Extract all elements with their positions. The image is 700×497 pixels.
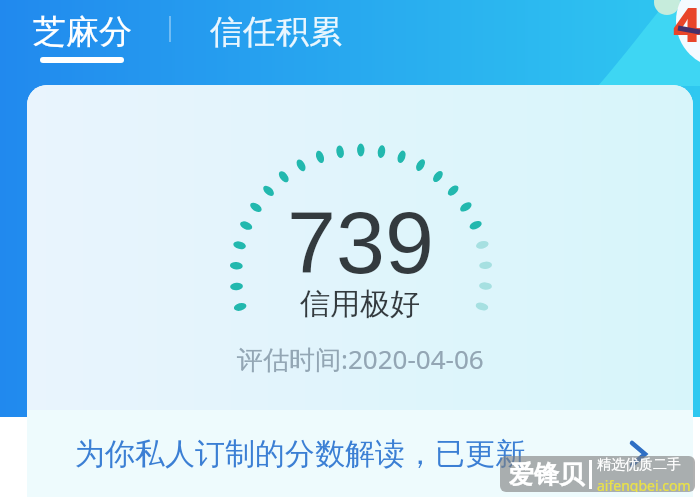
button[interactable]: 信任积累 [203, 4, 349, 56]
staticText: 为你私人订制的分数解读，已更新 [75, 435, 525, 473]
staticText: 739 [287, 193, 434, 291]
staticText: 信任积累 [210, 11, 342, 53]
staticText: 爱锋贝 [509, 459, 584, 490]
staticText: 精选优质二手 [597, 456, 681, 474]
other: 查看详情 [630, 441, 648, 467]
staticText: aifengbei.com [597, 476, 691, 492]
button[interactable]: 芝麻分 [27, 4, 137, 70]
button[interactable]: 为你私人订制的分数解读，已更新 [27, 410, 693, 497]
staticText: 评估时间:2020-04-06 [237, 341, 484, 377]
staticText: 4 [673, 0, 700, 56]
staticText: 信用极好 [300, 285, 420, 323]
staticText: 芝麻分 [33, 11, 132, 53]
